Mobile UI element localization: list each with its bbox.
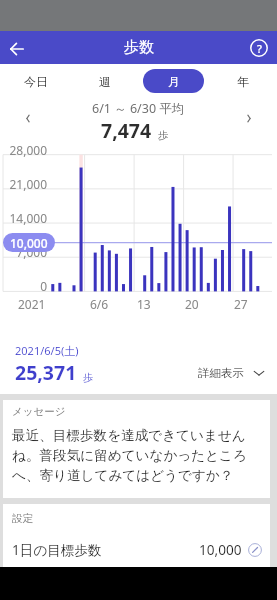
staticText: 設定 bbox=[12, 512, 33, 525]
staticText: 週 bbox=[99, 74, 111, 89]
staticText: 10,000 bbox=[199, 540, 242, 559]
staticText: 最近、目標歩数を達成できていませんね。普段気に留めていなかったところへ、寄り道し… bbox=[12, 427, 261, 484]
button[interactable]: 詳細表示 bbox=[194, 363, 269, 383]
staticText: 2021 bbox=[18, 296, 46, 312]
staticText: 21,000 bbox=[9, 176, 47, 192]
button[interactable]: Help bbox=[241, 31, 277, 64]
button[interactable]: Previous period bbox=[10, 97, 46, 140]
staticText: 歩数 bbox=[124, 38, 154, 57]
button[interactable]: 週 bbox=[74, 69, 135, 93]
staticText: 7,474 bbox=[101, 117, 152, 144]
staticText: 13 bbox=[137, 296, 151, 312]
button[interactable]: 月 bbox=[143, 69, 204, 93]
staticText: 1日の目標歩数 bbox=[12, 540, 102, 559]
staticText: 歩 bbox=[158, 129, 169, 142]
staticText: 14,000 bbox=[9, 210, 47, 226]
button[interactable]: 年 bbox=[212, 69, 273, 93]
staticText: 0 bbox=[40, 278, 47, 294]
staticText: 詳細表示 bbox=[198, 366, 244, 380]
staticText: 25,371 bbox=[15, 359, 77, 386]
staticText: 10,000 bbox=[10, 235, 48, 251]
staticText: 6/6 bbox=[90, 296, 109, 312]
staticText: 7,000 bbox=[16, 244, 47, 260]
staticText: 28,000 bbox=[9, 142, 47, 158]
staticText: 20 bbox=[185, 296, 199, 312]
staticText: 今日 bbox=[24, 74, 48, 89]
button[interactable]: Back bbox=[0, 31, 34, 64]
staticText: ? bbox=[257, 41, 262, 56]
staticText: 月 bbox=[168, 74, 180, 89]
staticText: 年 bbox=[237, 74, 249, 89]
staticText: メッセージ bbox=[12, 405, 66, 418]
button[interactable]: 今日 bbox=[5, 69, 66, 93]
staticText: 歩 bbox=[83, 371, 93, 384]
staticText: 6/1 ～ 6/30 平均 bbox=[92, 100, 185, 117]
staticText: 2021/6/5(土) bbox=[15, 343, 79, 358]
button[interactable]: 1日の目標歩数 bbox=[3, 532, 270, 567]
button[interactable]: Next period bbox=[231, 97, 267, 140]
staticText: 27 bbox=[234, 296, 248, 312]
